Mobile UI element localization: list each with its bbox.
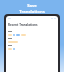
staticText: Translations xyxy=(19,9,45,15)
staticText: Save xyxy=(27,3,37,9)
button[interactable] xyxy=(6,31,58,38)
staticText: Recent Translations xyxy=(8,23,38,27)
button[interactable] xyxy=(6,38,58,45)
button[interactable] xyxy=(6,45,58,52)
